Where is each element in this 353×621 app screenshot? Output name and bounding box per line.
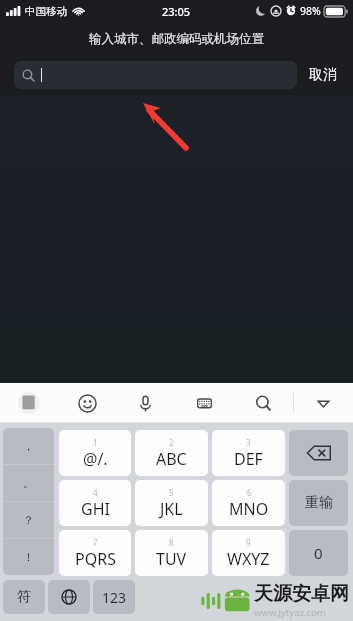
- button[interactable]: [14, 61, 297, 89]
- button[interactable]: ，: [3, 428, 54, 464]
- button[interactable]: 123: [93, 580, 135, 614]
- staticText: 7: [93, 537, 98, 548]
- staticText: TUV: [156, 548, 187, 570]
- button[interactable]: 3: [212, 430, 285, 476]
- staticText: 9: [246, 537, 251, 548]
- button[interactable]: Voice input: [116, 383, 175, 423]
- staticText: 23:05: [162, 4, 191, 19]
- button[interactable]: Hide keyboard: [294, 383, 353, 423]
- button[interactable]: Switch language: [48, 580, 90, 614]
- button[interactable]: 7: [59, 530, 131, 576]
- button[interactable]: Emoji: [58, 383, 116, 423]
- staticText: 123: [102, 588, 127, 607]
- staticText: www.jytyaz.com: [254, 606, 326, 619]
- staticText: @/.: [83, 448, 108, 470]
- staticText: 天源安卓网: [254, 582, 349, 606]
- button[interactable]: 6: [212, 480, 285, 526]
- staticText: ？: [23, 513, 34, 527]
- staticText: 0: [314, 543, 323, 563]
- staticText: GHI: [81, 498, 110, 520]
- staticText: 。: [23, 476, 34, 490]
- button[interactable]: 0: [289, 530, 348, 576]
- staticText: 3: [246, 437, 251, 448]
- staticText: 输入城市、邮政编码或机场位置: [89, 31, 264, 47]
- staticText: 取消: [309, 66, 337, 84]
- button[interactable]: 9: [212, 530, 285, 576]
- button[interactable]: 4: [59, 480, 131, 526]
- staticText: JKL: [160, 498, 183, 520]
- button[interactable]: 符: [3, 580, 45, 614]
- staticText: MNO: [229, 498, 269, 520]
- button[interactable]: ！: [3, 539, 54, 575]
- staticText: 2: [169, 437, 174, 448]
- button[interactable]: 8: [135, 530, 208, 576]
- staticText: ！: [23, 550, 34, 564]
- staticText: PQRS: [75, 548, 116, 570]
- button[interactable]: Input method logo: [0, 383, 58, 423]
- button[interactable]: Keyboard layout: [175, 383, 234, 423]
- button[interactable]: 重输: [289, 480, 348, 526]
- staticText: 8: [169, 537, 174, 548]
- staticText: 4: [93, 487, 98, 498]
- staticText: 5: [169, 487, 174, 498]
- button[interactable]: 取消: [307, 62, 339, 88]
- staticText: DEF: [234, 448, 263, 470]
- staticText: 98%: [300, 4, 321, 18]
- staticText: ABC: [156, 448, 187, 470]
- staticText: 符: [17, 588, 31, 606]
- staticText: 重输: [305, 494, 333, 512]
- staticText: 中国移动: [25, 5, 67, 18]
- staticText: ，: [23, 439, 34, 453]
- staticText: 6: [247, 487, 252, 498]
- staticText: 1: [93, 437, 98, 448]
- staticText: WXYZ: [227, 548, 270, 570]
- button[interactable]: ？: [3, 502, 54, 538]
- button[interactable]: 5: [135, 480, 208, 526]
- button[interactable]: 2: [135, 430, 208, 476]
- button[interactable]: 1: [59, 430, 131, 476]
- button[interactable]: Backspace: [289, 430, 348, 476]
- button[interactable]: Search: [234, 383, 293, 423]
